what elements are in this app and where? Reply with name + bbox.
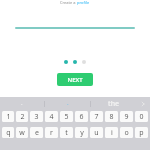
button[interactable]: o [120,127,133,138]
staticText: i [111,128,113,138]
button[interactable]: w [16,127,28,138]
staticText: 5 [64,112,69,122]
button[interactable]: i [105,127,118,138]
button[interactable]: q [2,127,14,138]
button[interactable]: 5 [60,111,73,122]
staticText: r [50,128,53,138]
staticText: Create a [60,0,76,5]
button[interactable]: 6 [75,111,88,122]
staticText: the [108,99,120,109]
staticText: 7 [94,112,99,122]
staticText: o [124,128,129,138]
button[interactable]: r [45,127,58,138]
staticText: · [21,100,23,108]
staticText: e [35,128,39,138]
button[interactable]: 7 [90,111,103,122]
staticText: 0 [139,112,144,122]
staticText: profile [77,0,90,5]
button[interactable]: u [90,127,103,138]
button[interactable]: 2 [16,111,28,122]
button[interactable]: More suggestions [136,97,150,110]
staticText: 2 [20,112,25,122]
staticText: 9 [124,112,129,122]
staticText: 8 [109,112,114,122]
staticText: NEXT [67,76,83,84]
staticText: u [94,128,99,138]
button[interactable]: 1 [2,111,14,122]
staticText: y [80,128,84,138]
button[interactable]: 0 [135,111,148,122]
button[interactable]: 4 [45,111,58,122]
button[interactable]: 9 [120,111,133,122]
button[interactable]: t [60,127,73,138]
staticText: q [6,128,11,138]
button[interactable]: e [30,127,43,138]
button[interactable]: 8 [105,111,118,122]
staticText: w [19,128,25,138]
staticText: 1 [6,112,11,122]
button[interactable]: p [135,127,148,138]
staticText: p [139,128,144,138]
staticText: t [65,128,68,138]
button[interactable]: the [91,97,136,110]
button[interactable]: 3 [30,111,43,122]
staticText: 3 [34,112,39,122]
staticText: 4 [49,112,54,122]
button[interactable]: NEXT [57,73,93,86]
staticText: 6 [79,112,84,122]
staticText: · [67,100,69,108]
button[interactable]: y [75,127,88,138]
